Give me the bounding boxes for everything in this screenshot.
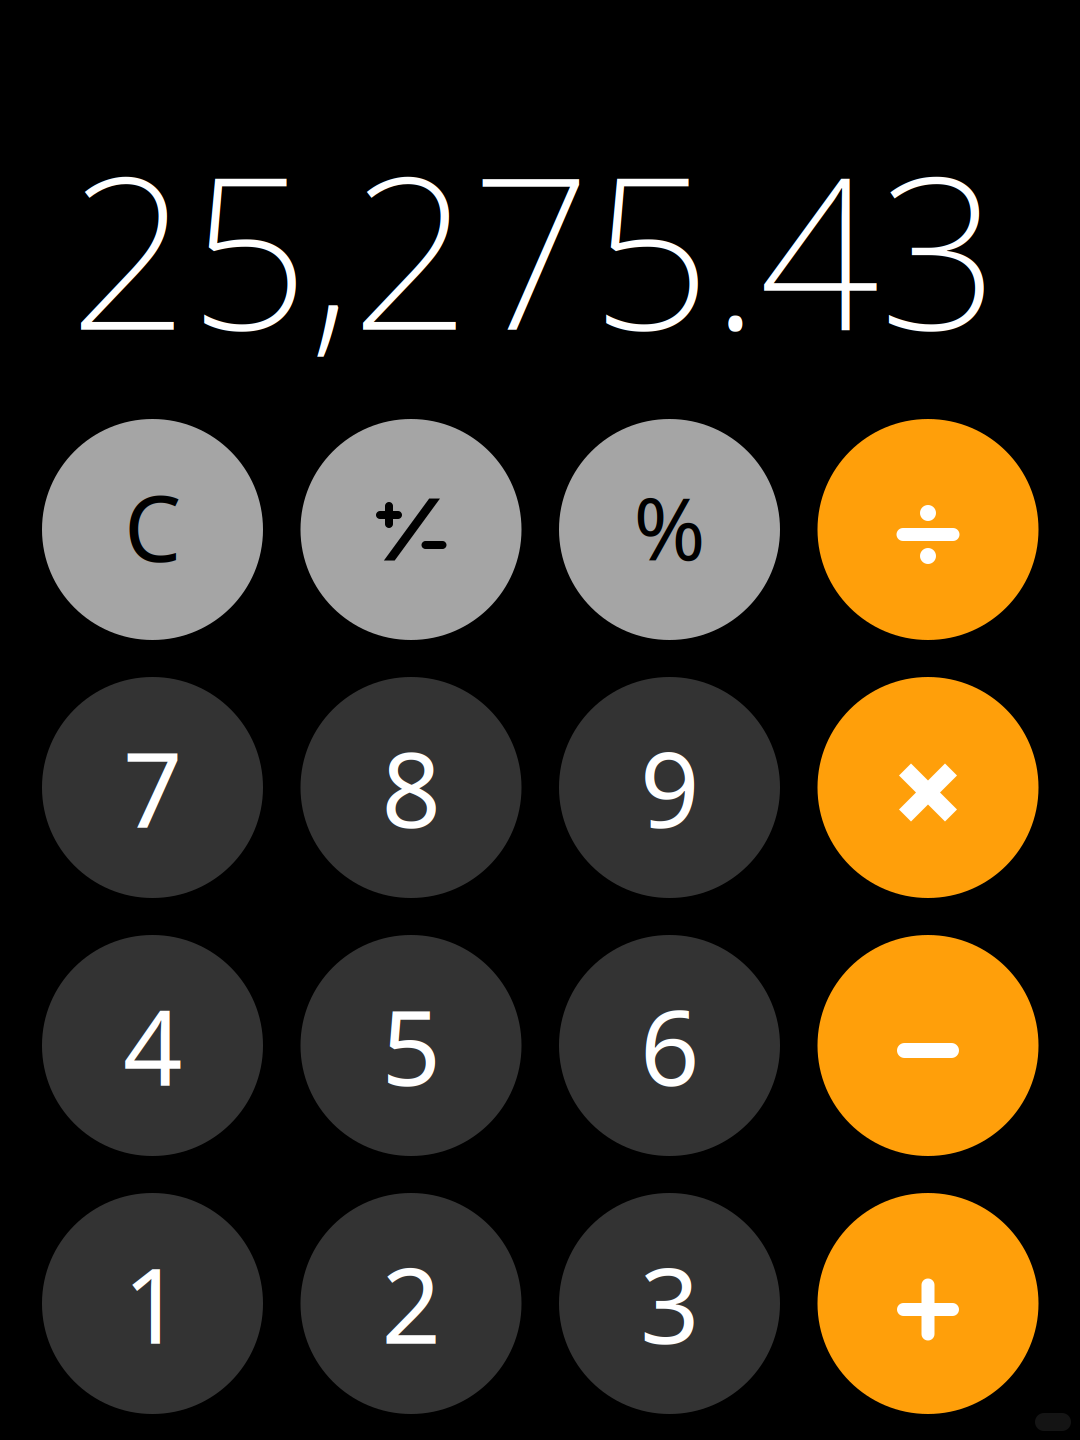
button[interactable]: 4 — [42, 935, 263, 1156]
staticText: 5 — [381, 976, 440, 1114]
staticText: 25,275.43 — [69, 108, 999, 388]
button[interactable]: 7 — [42, 677, 263, 898]
button[interactable]: Plus — [817, 1193, 1038, 1414]
button[interactable]: Plus Minus — [300, 419, 521, 640]
button[interactable]: Multiply — [817, 677, 1038, 898]
staticText: 1 — [123, 1234, 182, 1372]
staticText: 2 — [381, 1234, 440, 1372]
staticText: 9 — [640, 718, 699, 856]
button[interactable]: 1 — [42, 1193, 263, 1414]
staticText: 8 — [381, 718, 440, 856]
button[interactable]: 6 — [559, 935, 780, 1156]
button[interactable]: 9 — [559, 677, 780, 898]
button[interactable]: 8 — [300, 677, 521, 898]
button[interactable]: C — [42, 419, 263, 640]
staticText: 6 — [640, 976, 699, 1114]
staticText: 4 — [123, 976, 182, 1114]
staticText: 7 — [123, 718, 182, 856]
staticText: C — [124, 466, 181, 587]
button[interactable]: 5 — [300, 935, 521, 1156]
button[interactable]: Divide — [817, 419, 1038, 640]
button[interactable]: % — [559, 419, 780, 640]
staticText: 3 — [640, 1234, 699, 1372]
button[interactable]: 3 — [559, 1193, 780, 1414]
button[interactable]: Minus — [817, 935, 1038, 1156]
button[interactable]: 2 — [300, 1193, 521, 1414]
staticText: % — [633, 469, 705, 584]
